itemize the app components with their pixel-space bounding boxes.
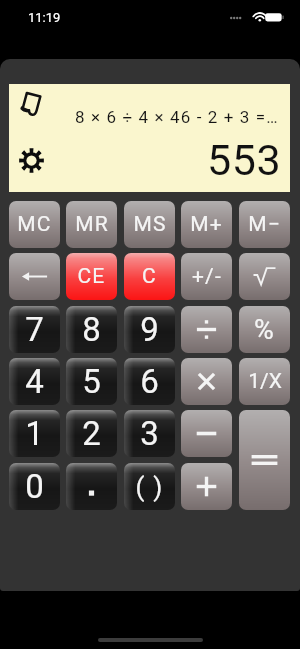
button[interactable]: 8 bbox=[66, 306, 117, 353]
button[interactable]: 6 bbox=[124, 358, 175, 405]
staticText: 2 bbox=[82, 414, 102, 453]
staticText: 11:19 bbox=[28, 10, 61, 25]
button[interactable]: 0 bbox=[9, 463, 60, 510]
staticText: 1/X bbox=[248, 369, 282, 394]
button[interactable]: 9 bbox=[124, 306, 175, 353]
staticText: 4 bbox=[25, 362, 45, 401]
button[interactable]: 5 bbox=[66, 358, 117, 405]
button[interactable]: M+ bbox=[181, 201, 232, 248]
button[interactable]: Backspace bbox=[9, 253, 60, 300]
staticText: 8 bbox=[82, 310, 102, 349]
button[interactable]: 2 bbox=[66, 410, 117, 457]
staticText: % bbox=[254, 314, 275, 346]
button[interactable]: MC bbox=[9, 201, 60, 248]
button[interactable]: C bbox=[124, 253, 175, 300]
staticText: M+ bbox=[190, 212, 223, 237]
staticText: 6 bbox=[140, 362, 160, 401]
staticText: +/- bbox=[192, 264, 222, 289]
staticText: 3 bbox=[140, 414, 160, 453]
staticText: C bbox=[142, 264, 157, 289]
staticText: MR bbox=[75, 212, 109, 237]
button[interactable]: 1 bbox=[9, 410, 60, 457]
staticText: CE bbox=[77, 264, 106, 289]
staticText: 7 bbox=[25, 310, 45, 349]
staticText: MS bbox=[133, 212, 167, 237]
button[interactable]: +/- bbox=[181, 253, 232, 300]
staticText: 553 bbox=[207, 135, 282, 185]
button[interactable]: Decimal point bbox=[66, 463, 117, 510]
staticText: 8 × 6 ÷ 4 × 46 - 2 + 3 =… bbox=[75, 107, 279, 127]
staticText: MC bbox=[17, 212, 52, 237]
button[interactable]: Divide bbox=[181, 306, 232, 353]
staticText: M− bbox=[248, 212, 281, 237]
button[interactable]: M− bbox=[239, 201, 290, 248]
staticText: 0 bbox=[25, 467, 45, 506]
button[interactable]: % bbox=[239, 306, 290, 353]
button[interactable]: Square root bbox=[239, 253, 290, 300]
button[interactable]: 7 bbox=[9, 306, 60, 353]
button[interactable]: Equals bbox=[239, 410, 290, 510]
button[interactable]: 1/X bbox=[239, 358, 290, 405]
staticText: 9 bbox=[140, 310, 160, 349]
button[interactable]: Minus bbox=[181, 410, 232, 457]
button[interactable]: MR bbox=[66, 201, 117, 248]
button[interactable]: Settings bbox=[19, 148, 44, 173]
button[interactable]: History bbox=[19, 92, 43, 116]
button[interactable]: Multiply bbox=[181, 358, 232, 405]
button[interactable]: 4 bbox=[9, 358, 60, 405]
staticText: ( ) bbox=[135, 472, 164, 502]
button[interactable]: MS bbox=[124, 201, 175, 248]
button[interactable]: ( ) bbox=[124, 463, 175, 510]
button[interactable]: Plus bbox=[181, 463, 232, 510]
staticText: 1 bbox=[25, 414, 45, 453]
staticText: 5 bbox=[82, 362, 102, 401]
button[interactable]: CE bbox=[66, 253, 117, 300]
button[interactable]: 3 bbox=[124, 410, 175, 457]
